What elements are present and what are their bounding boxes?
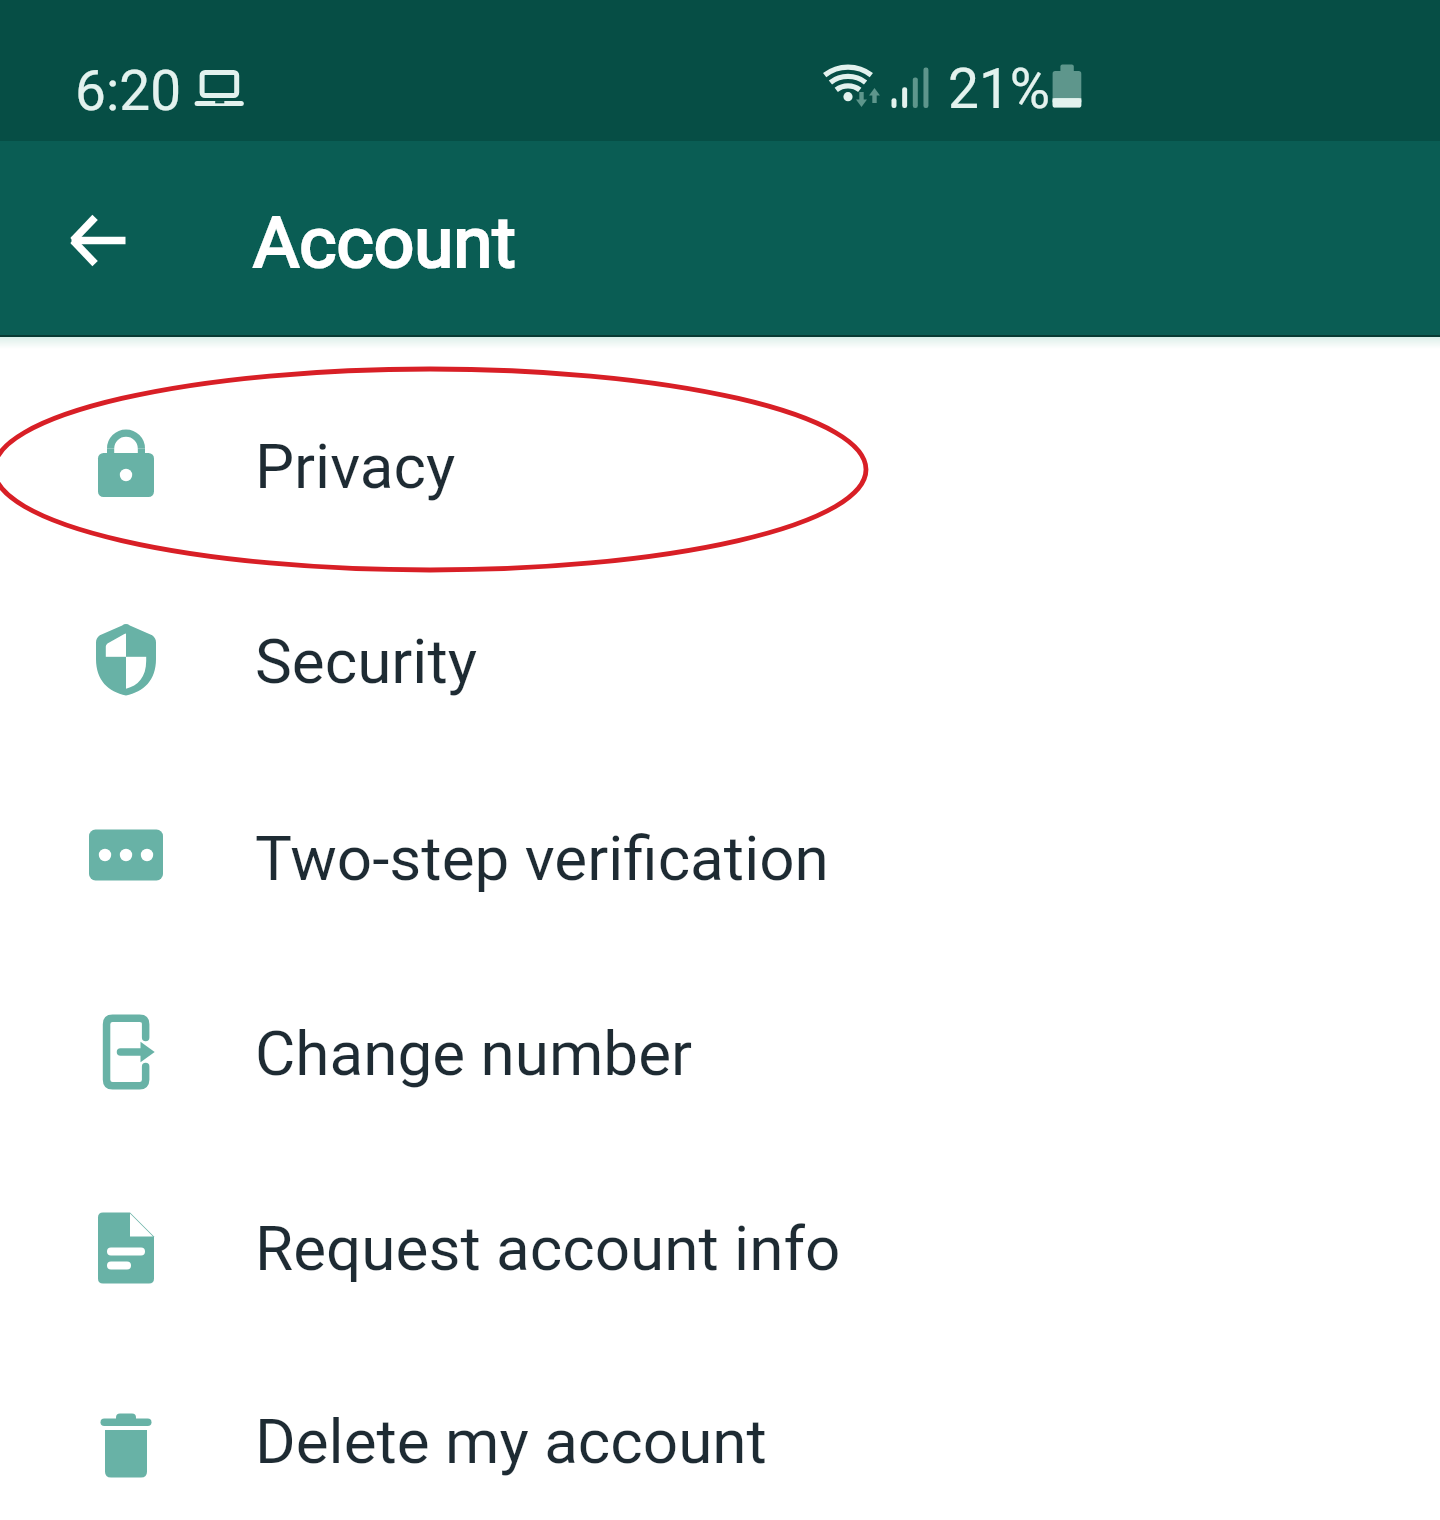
- button[interactable]: Request account info: [0, 1149, 1440, 1344]
- staticText: 21%: [948, 57, 1051, 121]
- staticText: Privacy: [255, 430, 456, 503]
- staticText: Request account info: [255, 1212, 841, 1285]
- button[interactable]: Security: [0, 562, 1440, 757]
- button[interactable]: Back: [44, 187, 152, 295]
- button[interactable]: Privacy: [0, 367, 1440, 562]
- staticText: Account: [253, 201, 516, 284]
- staticText: Delete my account: [255, 1405, 767, 1478]
- button[interactable]: Change number: [0, 954, 1440, 1149]
- staticText: Two-step verification: [255, 822, 829, 895]
- button[interactable]: Delete my account: [0, 1342, 1440, 1520]
- staticText: Change number: [255, 1017, 693, 1090]
- staticText: Security: [255, 625, 478, 698]
- staticText: 6:20: [75, 59, 182, 123]
- button[interactable]: Two-step verification: [0, 759, 1440, 954]
